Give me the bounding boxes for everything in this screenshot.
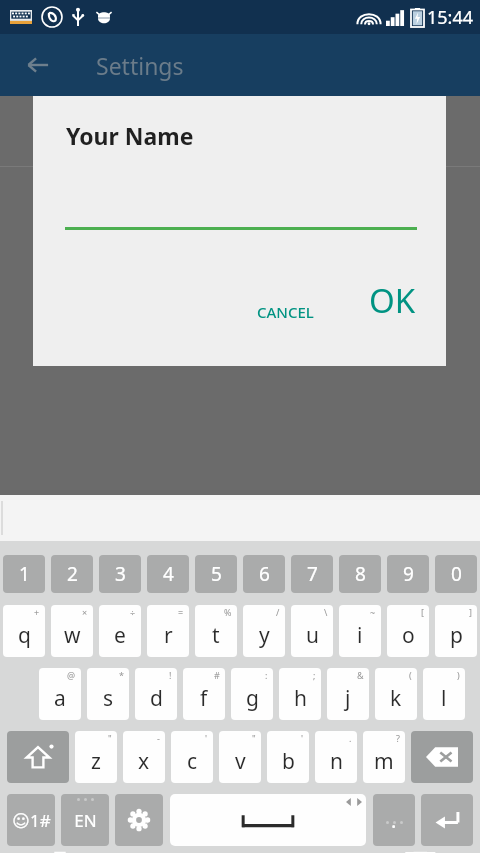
button[interactable]: ) [423, 668, 465, 720]
staticText: " [252, 732, 256, 744]
button[interactable]: 6 [243, 555, 285, 593]
staticText: # [214, 669, 220, 681]
staticText: i [357, 621, 363, 650]
staticText: ~ [370, 606, 376, 618]
button[interactable]: Back [18, 45, 58, 85]
button[interactable]: . [315, 731, 357, 783]
button[interactable]: ~ [339, 605, 381, 657]
staticText: ! [169, 669, 172, 681]
staticText: w [64, 621, 81, 650]
button[interactable]: 5 [195, 555, 237, 593]
staticText: d [150, 684, 163, 713]
button[interactable]: ÷ [99, 605, 141, 657]
staticText: 2 [67, 561, 78, 587]
staticText: q [18, 621, 31, 650]
staticText: s [103, 684, 114, 713]
button[interactable]: ; [279, 668, 321, 720]
staticText: ' [205, 732, 208, 744]
staticText: . [391, 807, 397, 834]
staticText: n [330, 747, 343, 776]
staticText: : [265, 669, 268, 681]
staticText: v [235, 747, 246, 776]
staticText: 8 [355, 561, 366, 587]
staticText: [ [421, 606, 424, 618]
button[interactable]: % [195, 605, 237, 657]
staticText: e [114, 621, 126, 650]
button[interactable]: ☺1# [7, 794, 55, 846]
button[interactable]: ] [435, 605, 477, 657]
button[interactable]: ( [375, 668, 417, 720]
staticText: z [91, 747, 101, 776]
staticText: ) [457, 669, 460, 681]
button[interactable]: OK [355, 270, 430, 331]
button[interactable]: 0 [435, 555, 477, 593]
staticText: p [450, 621, 463, 650]
staticText: * [119, 669, 124, 681]
staticText: CANCEL [257, 302, 314, 322]
button[interactable]: Enter [421, 794, 473, 846]
staticText: 1 [19, 561, 30, 587]
staticText: ] [469, 606, 472, 618]
staticText: l [441, 684, 447, 713]
staticText: b [282, 747, 295, 776]
button[interactable]: " [219, 731, 261, 783]
button[interactable]: = [147, 605, 189, 657]
staticText: % [224, 606, 232, 618]
staticText: ' [301, 732, 304, 744]
staticText: m [374, 747, 394, 776]
button[interactable]: 7 [291, 555, 333, 593]
button[interactable]: 8 [339, 555, 381, 593]
staticText: ( [409, 669, 412, 681]
staticText: 9 [403, 561, 414, 587]
button[interactable]: \ [291, 605, 333, 657]
staticText: 5 [211, 561, 222, 587]
button[interactable]: EN [61, 794, 109, 846]
staticText: 3 [115, 561, 126, 587]
button[interactable]: " [75, 731, 117, 783]
button[interactable]: ' [171, 731, 213, 783]
staticText: c [187, 747, 198, 776]
button[interactable]: 3 [99, 555, 141, 593]
button[interactable]: - [123, 731, 165, 783]
staticText: \ [324, 606, 328, 618]
button[interactable]: # [183, 668, 225, 720]
staticText: Your Name [66, 120, 194, 151]
button[interactable]: + [3, 605, 45, 657]
button[interactable]: ' [267, 731, 309, 783]
button[interactable]: Shift [7, 731, 69, 783]
button[interactable]: 9 [387, 555, 429, 593]
staticText: y [259, 621, 270, 650]
button[interactable]: & [327, 668, 369, 720]
button[interactable]: * [87, 668, 129, 720]
staticText: ? [396, 732, 400, 744]
button[interactable]: Backspace [411, 731, 473, 783]
button[interactable]: × [51, 605, 93, 657]
button[interactable]: 4 [147, 555, 189, 593]
button[interactable]: @ [39, 668, 81, 720]
button[interactable]: . [373, 794, 415, 846]
staticText: 15:44 [427, 5, 474, 30]
button[interactable]: : [231, 668, 273, 720]
button[interactable]: ? [363, 731, 405, 783]
staticText: ☺1# [12, 809, 51, 832]
button[interactable]: 2 [51, 555, 93, 593]
button[interactable]: Space [170, 794, 366, 846]
button[interactable]: ! [135, 668, 177, 720]
staticText: . [349, 732, 352, 744]
staticText: 7 [307, 561, 318, 587]
staticText: u [306, 621, 319, 650]
staticText: k [390, 684, 402, 713]
button[interactable]: CANCEL [245, 292, 326, 332]
staticText: x [138, 747, 150, 776]
button[interactable]: [ [387, 605, 429, 657]
button[interactable]: Keyboard settings [115, 794, 163, 846]
staticText: - [157, 732, 160, 744]
button[interactable]: 1 [3, 555, 45, 593]
staticText: ÷ [130, 606, 136, 618]
staticText: r [164, 621, 173, 650]
staticText: = [178, 606, 184, 618]
button[interactable]: / [243, 605, 285, 657]
staticText: j [345, 684, 351, 713]
staticText: t [212, 621, 220, 650]
staticText: 6 [259, 561, 270, 587]
